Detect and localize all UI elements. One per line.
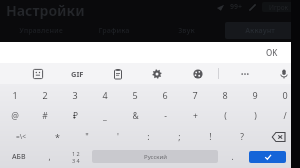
staticText: # [42,110,48,122]
button[interactable]: # [30,105,60,126]
button[interactable]: - [150,105,180,126]
staticText: ? [240,131,244,143]
staticText: 2 [42,89,48,101]
button[interactable]: 5 [120,84,150,105]
button[interactable]: ? [226,126,257,147]
button[interactable]: 1 [0,84,30,105]
button[interactable]: ' [102,126,133,147]
button[interactable]: Ping [216,3,225,12]
button[interactable]: ( [210,105,240,126]
staticText: 7 [192,89,198,101]
button[interactable]: , [37,147,62,166]
button[interactable]: ! [195,126,226,147]
button[interactable]: + [180,105,210,126]
staticText: + [193,110,198,122]
staticText: _ [103,110,107,122]
staticText: Управление [19,26,63,36]
button[interactable]: Clipboard [108,64,128,84]
staticText: Игрок [269,3,289,12]
staticText: =\< [16,132,26,141]
button[interactable]: 9 [240,84,270,105]
staticText: 5 [132,89,138,101]
button[interactable]: _ [90,105,120,126]
button[interactable]: GIF [67,64,87,84]
staticText: / [283,110,287,122]
staticText: Звук [178,26,195,36]
button[interactable]: =\< [0,126,42,147]
staticText: @ [11,110,19,122]
button[interactable]: * [42,126,72,147]
button[interactable]: ) [240,105,270,126]
button[interactable]: Voice input [274,64,294,84]
staticText: ; [178,131,181,143]
button[interactable]: 6 [150,84,180,105]
staticText: ( [224,110,227,122]
staticText: ₽ [73,110,78,122]
button[interactable]: 0 [270,84,300,105]
button[interactable]: More [235,64,255,84]
button[interactable]: ₽ [60,105,90,126]
button[interactable]: Stickers [28,64,48,84]
staticText: Настройки [6,1,85,20]
button[interactable]: Русский [92,150,218,163]
staticText: OK [266,47,278,58]
staticText: 1 [12,89,18,101]
staticText: Русский [144,153,167,161]
staticText: ! [209,131,212,143]
staticText: 99+ [230,2,243,12]
staticText: 9 [252,89,258,101]
staticText: ) [254,110,257,122]
button[interactable]: Settings [147,64,167,84]
staticText: 4 [102,89,108,101]
staticText: - [164,110,167,122]
button[interactable]: OK [266,47,278,58]
staticText: : [147,131,150,143]
button[interactable]: 2 [30,84,60,105]
button[interactable]: " [72,126,102,147]
button[interactable]: . [220,147,245,166]
staticText: 8 [222,89,228,101]
button[interactable]: Аккаунт [225,22,294,39]
staticText: 3 [72,89,78,101]
button[interactable]: Backspace [257,126,300,147]
staticText: 3 4 [72,157,80,164]
staticText: " [85,131,89,143]
staticText: АБВ [12,152,26,162]
button[interactable]: 3 [60,84,90,105]
staticText: , [48,151,51,162]
button[interactable]: Theme [188,64,208,84]
button[interactable]: & [120,105,150,126]
staticText: 0 [282,89,288,101]
staticText: Аккаунт [245,26,275,36]
button[interactable]: 4 [90,84,120,105]
staticText: Графика [98,26,130,36]
button[interactable]: Игрок [262,2,296,12]
button[interactable]: @ [0,105,30,126]
button[interactable]: Enter [249,151,286,163]
staticText: . [231,151,234,162]
staticText: ' [117,131,119,143]
button[interactable]: Графика [79,22,148,39]
button[interactable]: Управление [6,22,75,39]
staticText: 1 2 [72,150,80,157]
button[interactable]: 7 [180,84,210,105]
staticText: * [55,131,60,143]
button[interactable]: Tools [248,3,257,12]
staticText: GIF [71,69,84,79]
button[interactable]: 8 [210,84,240,105]
button[interactable]: ; [164,126,195,147]
staticText: 6 [162,89,168,101]
button[interactable]: : [133,126,164,147]
button[interactable]: / [270,105,300,126]
button[interactable]: АБВ [0,147,37,166]
button[interactable]: 1 2 [62,147,90,166]
staticText: & [132,110,139,122]
